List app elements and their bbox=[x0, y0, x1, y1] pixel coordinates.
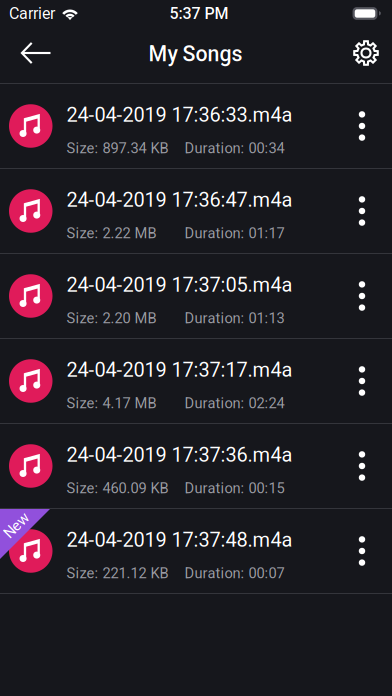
staticText: Duration: 01:17 bbox=[184, 225, 284, 242]
button[interactable]: 24-04-2019 17:37:48.m4a bbox=[0, 509, 392, 593]
staticText: Carrier bbox=[9, 4, 55, 23]
button[interactable]: Back bbox=[11, 28, 61, 78]
staticText: 24-04-2019 17:37:36.m4a bbox=[66, 443, 292, 467]
staticText: 5:37 PM bbox=[169, 4, 228, 23]
staticText: Size: 2.22 MB bbox=[66, 225, 156, 242]
staticText: Duration: 02:24 bbox=[184, 395, 284, 412]
staticText: 24-04-2019 17:37:48.m4a bbox=[66, 528, 292, 552]
button[interactable]: 24-04-2019 17:36:47.m4a bbox=[0, 169, 392, 253]
staticText: Duration: 01:13 bbox=[184, 310, 284, 327]
staticText: My Songs bbox=[148, 41, 242, 66]
button[interactable]: 24-04-2019 17:36:33.m4a bbox=[0, 84, 392, 168]
staticText: Duration: 00:15 bbox=[184, 480, 284, 497]
staticText: 24-04-2019 17:36:33.m4a bbox=[66, 103, 292, 127]
staticText: Size: 2.20 MB bbox=[66, 310, 156, 327]
staticText: Size: 897.34 KB bbox=[66, 140, 168, 157]
staticText: 24-04-2019 17:37:17.m4a bbox=[66, 358, 292, 382]
staticText: Duration: 00:34 bbox=[184, 140, 284, 157]
button[interactable]: 24-04-2019 17:37:17.m4a bbox=[0, 339, 392, 423]
staticText: New bbox=[2, 517, 31, 534]
staticText: Size: 4.17 MB bbox=[66, 395, 156, 412]
button[interactable]: 24-04-2019 17:37:36.m4a bbox=[0, 424, 392, 508]
staticText: Size: 221.12 KB bbox=[66, 565, 168, 582]
button[interactable]: 24-04-2019 17:37:05.m4a bbox=[0, 254, 392, 338]
staticText: 24-04-2019 17:36:47.m4a bbox=[66, 188, 292, 212]
button[interactable]: Settings bbox=[343, 30, 389, 76]
staticText: Duration: 00:07 bbox=[184, 565, 284, 582]
staticText: Size: 460.09 KB bbox=[66, 480, 168, 497]
staticText: 24-04-2019 17:37:05.m4a bbox=[66, 273, 292, 297]
